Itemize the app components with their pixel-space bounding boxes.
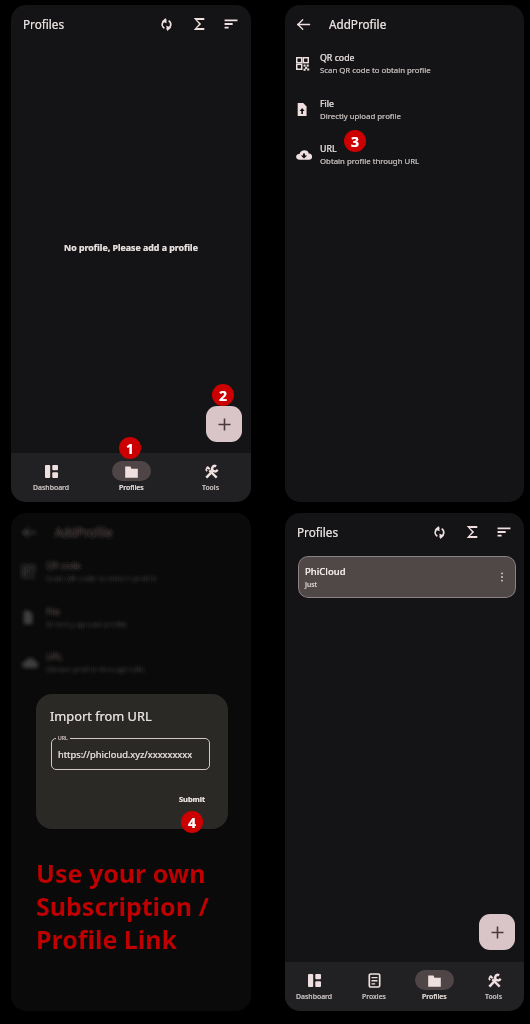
button[interactable]: Sync [153,11,179,37]
staticText: URL [47,650,64,662]
button[interactable]: Sort [218,11,244,37]
staticText: Directly upload profile [48,619,129,630]
staticText: QR code [46,563,81,575]
staticText: Obtain profile through URL [49,664,149,675]
button[interactable]: Tools [171,453,251,502]
staticText: QR code [46,558,81,570]
staticText: 2 [219,386,228,405]
staticText: Scan QR code to obtain profile [48,575,159,586]
staticText: Import from URL [50,707,152,724]
button[interactable]: Add profile [479,914,515,950]
staticText: Subscription / [36,889,209,922]
staticText: Directly upload profile [48,617,129,628]
staticText: File [48,604,63,616]
button[interactable]: More options [493,568,511,586]
staticText: Directly upload profile [45,618,126,629]
staticText: 4 [188,813,197,832]
staticText: Use your own [36,856,206,889]
staticText: Scan QR code to obtain profile [45,572,156,583]
button[interactable]: Sync [426,519,452,545]
staticText: File [320,98,335,110]
staticText: Dashboard [296,992,333,1001]
staticText: URL [47,652,64,664]
staticText: QR code [46,557,81,569]
staticText: Scan QR code to obtain profile [48,571,159,582]
staticText: Directly upload profile [46,621,127,632]
staticText: Tools [202,483,220,492]
staticText: Scan QR code to obtain profile [47,572,158,583]
staticText: Proxies [362,992,386,1001]
staticText: URL [44,651,61,663]
staticText: QR code [45,561,80,573]
staticText: Profiles [422,992,447,1001]
button[interactable]: Sort [491,519,517,545]
staticText: Directly upload profile [44,621,125,632]
staticText: Directly upload profile [43,619,124,630]
staticText: File [44,604,59,616]
button[interactable]: PhiCloud [298,556,516,598]
button[interactable]: Traffic total [459,519,485,545]
button[interactable]: Proxies [344,962,404,1011]
staticText: AddProfile [56,525,114,541]
staticText: URL [49,651,66,663]
staticText: URL [46,651,63,663]
staticText: File [45,605,60,617]
staticText: File [47,607,62,619]
button[interactable]: Back [291,12,315,36]
staticText: URL [45,650,62,662]
staticText: AddProfile [53,522,111,538]
staticText: Obtain profile through URL [48,666,148,677]
staticText: File [47,605,62,617]
staticText: URL [43,651,60,663]
staticText: QR code [44,558,79,570]
staticText: QR code [46,562,81,574]
staticText: Obtain profile through URL [48,662,148,673]
staticText: File [46,609,61,621]
button[interactable]: Dashboard [11,453,91,502]
button[interactable]: File [285,87,524,132]
staticText: Obtain profile through URL [45,665,145,676]
button[interactable]: Profiles [91,453,171,502]
staticText: AddProfile [58,524,116,540]
staticText: Obtain profile through URL [320,156,420,167]
staticText: URL [58,735,68,742]
staticText: File [46,606,61,618]
button[interactable]: Submit [179,794,206,804]
staticText: AddProfile [55,522,113,538]
staticText: Obtain profile through URL [47,663,147,674]
staticText: https://phicloud.xyz/xxxxxxxxx [58,748,193,761]
staticText: URL [320,143,337,155]
button[interactable]: QR code [285,41,524,86]
staticText: AddProfile [53,524,111,540]
staticText: URL [44,649,61,661]
staticText: URL [48,649,65,661]
staticText: Profiles [119,483,144,492]
staticText: File [44,608,59,620]
button[interactable]: Profiles [404,962,464,1011]
staticText: PhiCloud [305,565,346,578]
staticText: QR code [44,560,79,572]
staticText: AddProfile [55,524,113,540]
staticText: 3 [351,132,360,151]
staticText: Scan QR code to obtain profile [44,571,155,582]
button[interactable]: URL [285,132,524,177]
staticText: File [46,608,61,620]
button[interactable]: Traffic total [186,11,212,37]
staticText: Obtain profile through URL [43,664,143,675]
staticText: Obtain profile through URL [46,666,146,677]
staticText: Obtain profile through URL [44,664,144,675]
staticText: AddProfile [57,522,115,538]
button[interactable]: Add profile [206,406,242,442]
staticText: Scan QR code to obtain profile [46,571,157,582]
staticText: AddProfile [55,526,113,542]
staticText: Obtain profile through URL [46,664,146,675]
staticText: URL [45,652,62,664]
button[interactable]: Dashboard [285,962,344,1011]
staticText: Scan QR code to obtain profile [46,573,157,584]
staticText: AddProfile [57,524,115,540]
button[interactable]: Tools [464,962,524,1011]
staticText: Scan QR code to obtain profile [45,574,156,585]
staticText: Just [305,580,318,589]
staticText: URL [46,654,63,666]
staticText: Directly upload profile [47,620,128,631]
